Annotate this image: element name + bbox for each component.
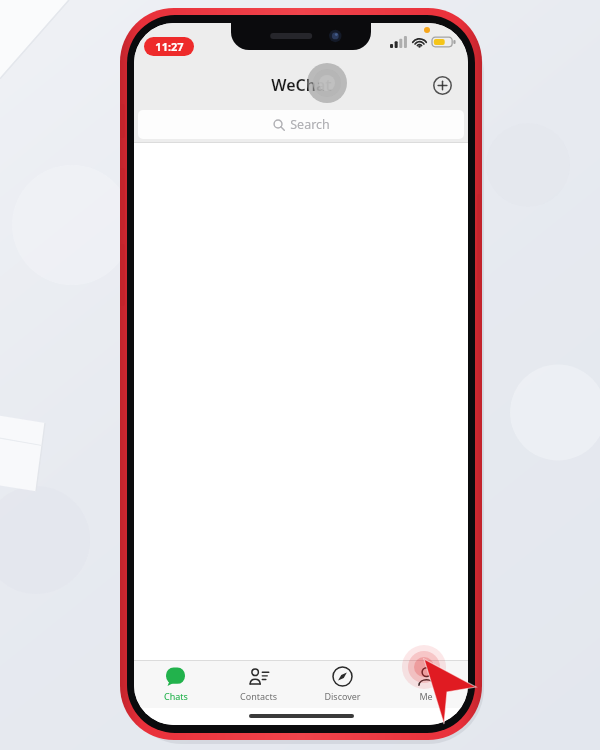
button[interactable]: Search (138, 110, 464, 139)
staticText: Contacts (240, 690, 277, 702)
staticText: Me (419, 690, 433, 702)
button[interactable]: Chats (134, 660, 217, 708)
staticText: Chats (164, 690, 188, 702)
staticText: Search (290, 116, 330, 133)
button[interactable]: Contacts (217, 660, 300, 708)
button[interactable]: Add (426, 69, 458, 101)
staticText: WeChat (271, 74, 332, 96)
staticText: 11:27 (155, 39, 184, 54)
button[interactable]: Me (384, 660, 468, 708)
button[interactable]: Discover (300, 660, 384, 708)
staticText: Discover (324, 690, 361, 702)
